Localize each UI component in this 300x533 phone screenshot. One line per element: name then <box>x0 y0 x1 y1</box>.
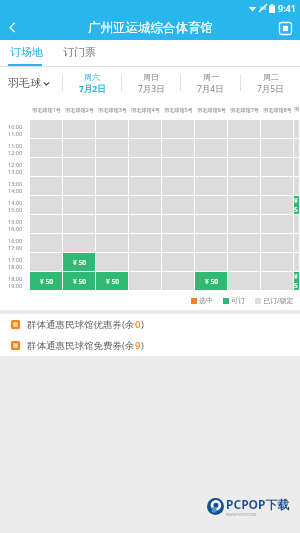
button[interactable]: ¥ 50 <box>63 253 95 271</box>
button[interactable]: 周日 <box>122 67 180 99</box>
button[interactable]: Back <box>0 15 25 40</box>
button[interactable]: 群体通惠民球馆免费券(余 <box>0 335 300 356</box>
button[interactable]: 周二 <box>241 67 300 99</box>
button[interactable]: ¥ 50 <box>294 196 299 214</box>
button[interactable]: 周六 <box>63 67 121 99</box>
staticText: 15:00 <box>8 218 23 225</box>
button[interactable]: ¥ 50 <box>96 272 128 290</box>
staticText: 周六 <box>84 72 100 82</box>
button[interactable]: 周一 <box>181 67 240 99</box>
button[interactable]: 群体通惠民球馆优惠券(余 <box>0 314 300 335</box>
button[interactable]: ¥ 50 <box>195 272 227 290</box>
staticText: 18:00 <box>8 263 23 270</box>
button[interactable]: ¥ 50 <box>294 272 299 290</box>
button[interactable]: 订门票 <box>61 45 98 59</box>
staticText: ¥ 50 <box>73 277 86 286</box>
button[interactable]: Venue list <box>275 18 295 38</box>
staticText: ¥ 50 <box>294 272 299 290</box>
button[interactable]: ¥ 50 <box>63 272 95 290</box>
staticText: 10:00 <box>8 123 23 130</box>
button[interactable]: 羽毛球 <box>0 67 62 99</box>
staticText: 羽毛球馆1号 <box>32 106 61 113</box>
staticText: 14:00 <box>8 187 23 194</box>
button[interactable]: ¥ 50 <box>30 272 62 290</box>
button[interactable]: 订场地 <box>8 45 45 59</box>
